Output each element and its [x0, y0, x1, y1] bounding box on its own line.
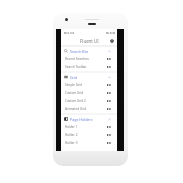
button[interactable]: Simple Grid	[61, 81, 117, 89]
staticText: Search Bar	[70, 49, 89, 54]
staticText: Page Holders	[70, 117, 93, 122]
button[interactable]: Holder 3	[61, 139, 117, 147]
button[interactable]: Recent Searches	[61, 55, 117, 63]
button[interactable]: Holder 2	[61, 131, 117, 139]
staticText: Recent Searches	[65, 57, 89, 61]
staticText: Holder 3	[65, 141, 78, 145]
staticText: Animated Grid	[65, 107, 87, 111]
button[interactable]: Grid	[61, 73, 117, 81]
staticText: Custom Grid 2	[65, 99, 86, 103]
staticText: Holder 2	[65, 133, 78, 137]
button[interactable]: Holder 1	[61, 123, 117, 131]
staticText: Search Toolbar	[65, 65, 87, 69]
button[interactable]: Page Holders	[61, 115, 117, 123]
button[interactable]: Account	[110, 39, 114, 43]
staticText: Custom Grid	[65, 91, 84, 95]
button[interactable]: Custom Grid	[61, 89, 117, 97]
button[interactable]: Custom Grid 2	[61, 97, 117, 105]
button[interactable]: Search Bar	[61, 47, 117, 55]
button[interactable]: Animated Grid	[61, 105, 117, 113]
staticText: Holder 1	[65, 125, 78, 129]
staticText: Simple Grid	[65, 83, 82, 87]
staticText: Grid	[70, 75, 78, 80]
button[interactable]: Search Toolbar	[61, 63, 117, 71]
staticText: Fluent UI	[80, 38, 99, 44]
